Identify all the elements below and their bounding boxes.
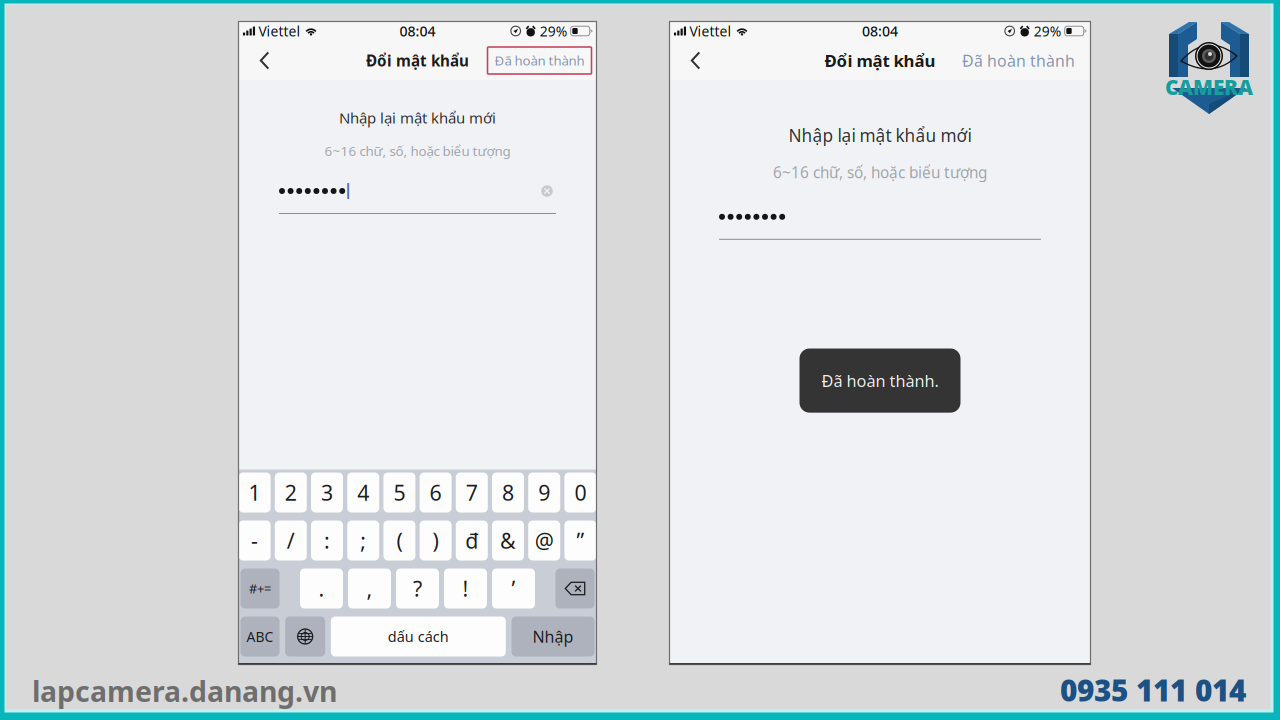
staticText: Nhập lại mật khẩu mới bbox=[339, 107, 496, 128]
staticText: Đã hoàn thành bbox=[494, 51, 584, 69]
button[interactable]: ( bbox=[383, 520, 415, 560]
staticText: ABC bbox=[246, 627, 273, 646]
staticText: ? bbox=[413, 574, 422, 603]
button[interactable]: ! bbox=[444, 568, 487, 608]
button[interactable]: 0 bbox=[564, 472, 596, 512]
button[interactable]: Back bbox=[243, 43, 285, 77]
staticText: 8 bbox=[502, 478, 514, 507]
button[interactable]: Đã hoàn thành. bbox=[799, 348, 960, 413]
staticText: 0935 111 014 bbox=[1060, 670, 1246, 710]
button[interactable]: & bbox=[492, 520, 524, 560]
staticText: 08:04 bbox=[399, 21, 435, 41]
button[interactable]: 6 bbox=[420, 472, 452, 512]
button[interactable]: 7 bbox=[456, 472, 488, 512]
staticText: Đã hoàn thành bbox=[962, 50, 1075, 71]
button[interactable]: ? bbox=[396, 568, 439, 608]
staticText: , bbox=[366, 574, 372, 603]
button[interactable]: #+= bbox=[240, 568, 279, 608]
staticText: : bbox=[324, 526, 330, 555]
button[interactable]: 9 bbox=[528, 472, 560, 512]
staticText: Nhập lại mật khẩu mới bbox=[788, 123, 971, 147]
staticText: #+= bbox=[249, 580, 271, 597]
staticText: ) bbox=[433, 526, 439, 555]
staticText: 2 bbox=[285, 478, 297, 507]
staticText: - bbox=[251, 526, 258, 555]
staticText: 08:04 bbox=[862, 21, 898, 41]
staticText: CAMERA bbox=[1165, 73, 1253, 101]
staticText: ” bbox=[576, 526, 584, 555]
staticText: 0 bbox=[574, 478, 586, 507]
button[interactable]: đ bbox=[456, 520, 488, 560]
button[interactable]: 2 bbox=[275, 472, 307, 512]
staticText: & bbox=[500, 526, 516, 555]
button[interactable]: ; bbox=[347, 520, 379, 560]
button[interactable]: @ bbox=[528, 520, 560, 560]
button[interactable]: Clear text bbox=[538, 182, 556, 200]
button[interactable]: 3 bbox=[311, 472, 343, 512]
staticText: ( bbox=[396, 526, 402, 555]
staticText: 9 bbox=[538, 478, 550, 507]
staticText: Viettel bbox=[258, 22, 300, 40]
staticText: / bbox=[287, 526, 295, 555]
button[interactable]: ” bbox=[564, 520, 596, 560]
staticText: . bbox=[318, 574, 324, 603]
staticText: đ bbox=[465, 526, 478, 555]
staticText: dấu cách bbox=[388, 627, 449, 646]
button[interactable]: . bbox=[300, 568, 343, 608]
button[interactable]: : bbox=[311, 520, 343, 560]
button[interactable]: 1 bbox=[239, 472, 271, 512]
staticText: 4 bbox=[357, 478, 369, 507]
button[interactable]: ’ bbox=[492, 568, 535, 608]
button[interactable]: dấu cách bbox=[331, 616, 506, 656]
button[interactable]: ABC bbox=[240, 616, 279, 656]
staticText: 29% bbox=[540, 22, 568, 40]
staticText: 3 bbox=[321, 478, 333, 507]
button[interactable]: Đã hoàn thành bbox=[487, 47, 591, 74]
button[interactable]: / bbox=[275, 520, 307, 560]
staticText: ! bbox=[462, 574, 468, 603]
button[interactable]: - bbox=[239, 520, 271, 560]
button[interactable]: Nhập bbox=[511, 616, 594, 656]
staticText: 1 bbox=[249, 478, 261, 507]
staticText: Đổi mật khẩu bbox=[824, 49, 935, 72]
button[interactable]: Delete bbox=[555, 568, 594, 608]
staticText: ; bbox=[360, 526, 366, 555]
staticText: 29% bbox=[1034, 22, 1062, 40]
staticText: @ bbox=[535, 526, 554, 555]
button[interactable]: Back bbox=[674, 43, 716, 77]
button[interactable]: ) bbox=[420, 520, 452, 560]
staticText: lapcamera.danang.vn bbox=[32, 672, 337, 710]
staticText: Đã hoàn thành. bbox=[821, 369, 938, 392]
button[interactable]: 4 bbox=[347, 472, 379, 512]
button[interactable]: , bbox=[348, 568, 391, 608]
button[interactable]: 5 bbox=[383, 472, 415, 512]
staticText: 6~16 chữ, số, hoặc biểu tượng bbox=[324, 142, 510, 160]
button[interactable]: Next keyboard bbox=[285, 616, 325, 656]
staticText: Viettel bbox=[689, 22, 731, 40]
staticText: 6~16 chữ, số, hoặc biểu tượng bbox=[773, 162, 987, 183]
button[interactable]: Đã hoàn thành bbox=[960, 47, 1085, 74]
staticText: 7 bbox=[466, 478, 478, 507]
staticText: ’ bbox=[511, 574, 515, 603]
staticText: 5 bbox=[393, 478, 405, 507]
staticText: Đổi mật khẩu bbox=[366, 50, 469, 71]
staticText: Nhập bbox=[532, 626, 573, 647]
staticText: 6 bbox=[430, 478, 442, 507]
button[interactable]: 8 bbox=[492, 472, 524, 512]
